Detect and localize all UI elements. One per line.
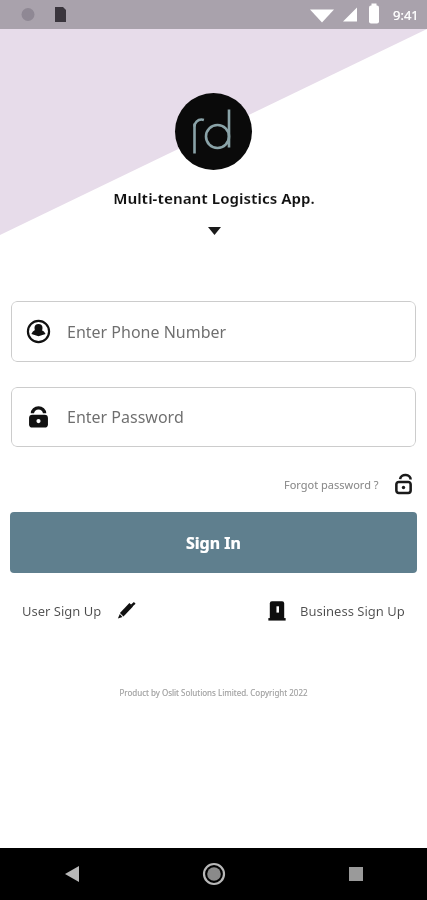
button[interactable]: User Sign Up [22, 595, 135, 626]
button[interactable]: Enter Phone Number [11, 301, 416, 362]
staticText: Enter Phone Number [67, 321, 227, 343]
button[interactable]: Enter Password [11, 387, 416, 447]
staticText: User Sign Up [22, 602, 102, 620]
staticText: Multi-tenant Logistics App. [113, 188, 315, 208]
button[interactable]: Select tenant [197, 221, 231, 241]
staticText: Forgot password ? [284, 477, 379, 492]
button[interactable]: Home [143, 848, 285, 900]
staticText: Enter Password [67, 406, 184, 428]
staticText: Sign In [186, 532, 241, 554]
button[interactable]: Recent apps [285, 848, 427, 900]
button[interactable]: Forgot password ? [282, 470, 414, 498]
staticText: Business Sign Up [300, 602, 405, 620]
button[interactable]: Back [0, 848, 143, 900]
button[interactable]: Business Sign Up [268, 594, 405, 627]
button[interactable]: Sign In [10, 512, 417, 573]
staticText: 9:41 [393, 6, 419, 24]
staticText: Product by Oslit Solutions Limited. Copy… [119, 687, 308, 698]
